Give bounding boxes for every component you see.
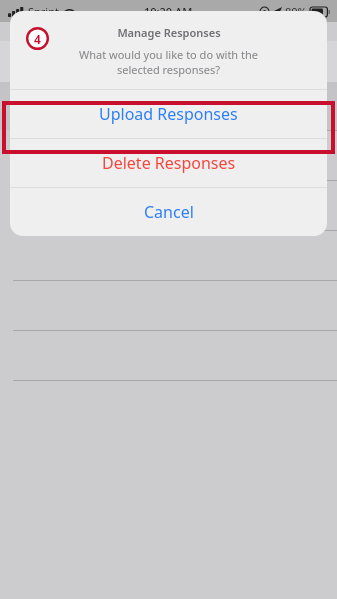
button[interactable]	[0, 181, 337, 230]
staticText: Manage Responses	[117, 25, 221, 40]
staticText: Cancel	[144, 201, 194, 223]
staticText: Delete Responses	[102, 152, 236, 174]
button[interactable]: Done	[283, 45, 337, 79]
button[interactable]	[0, 231, 337, 280]
staticText: Sprint	[28, 4, 59, 19]
staticText: Incomplete Responses	[78, 50, 259, 73]
staticText: 80%	[285, 4, 307, 19]
button[interactable]: partial response	[0, 82, 337, 130]
staticText: 4	[34, 31, 41, 47]
staticText: What would you like to do with the selec…	[79, 47, 258, 77]
button[interactable]: Close	[294, 22, 337, 41]
staticText: Upload Responses	[99, 103, 238, 125]
button[interactable]: Upload Responses	[10, 90, 327, 138]
button[interactable]: Cancel	[10, 188, 327, 236]
button[interactable]: Delete Responses	[10, 139, 327, 187]
staticText: partial response	[49, 90, 152, 108]
button[interactable]	[0, 131, 337, 180]
staticText: September 3, 2020 10:19:32 AM	[49, 110, 191, 123]
staticText: 10:20 AM	[144, 4, 193, 19]
button[interactable]: Action	[0, 45, 64, 79]
